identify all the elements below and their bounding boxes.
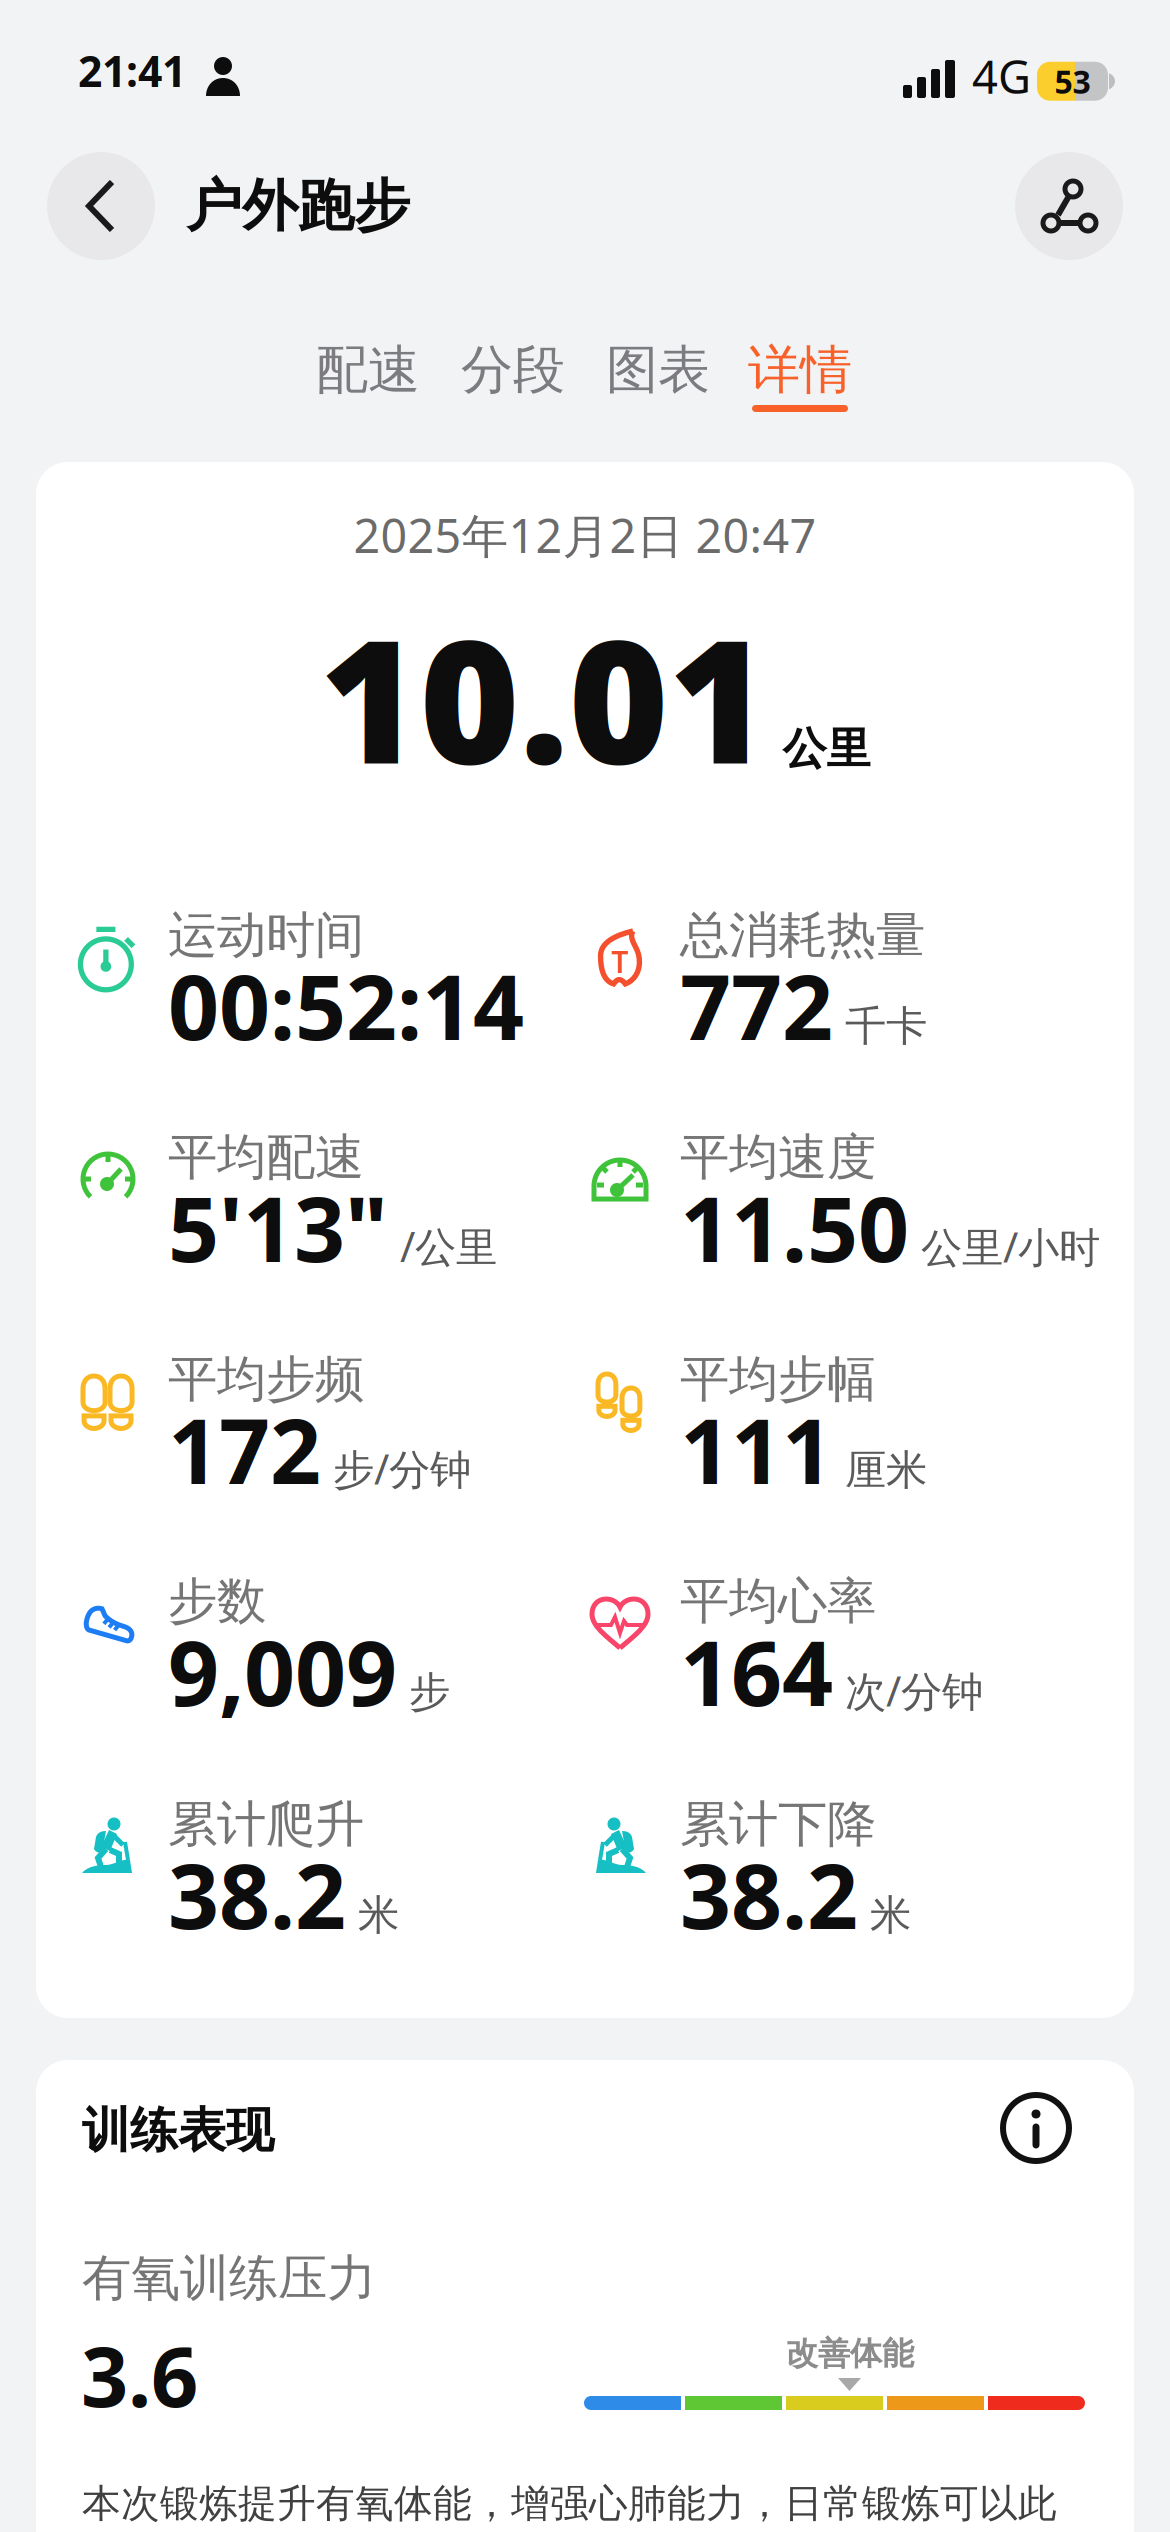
staticText: 平均心率 [680,1571,876,1632]
staticText: 平均步幅 [680,1349,876,1410]
staticText: 00:52:14 [168,946,524,1065]
staticText: 21:41 [78,42,186,99]
staticText: 平均步频 [168,1349,364,1410]
staticText: /公里 [400,1218,497,1273]
staticText: 3.6 [81,2320,198,2430]
staticText: 53 [1054,60,1090,102]
staticText: 4G [972,46,1031,106]
staticText: 次/分钟 [845,1663,983,1718]
staticText: 配速 [316,338,420,402]
staticText: 公里/小时 [921,1219,1100,1274]
button[interactable]: 图表 [586,338,730,434]
staticText: 米 [358,1890,399,1941]
staticText: 111 [680,1390,833,1509]
staticText: 步 [409,1667,450,1718]
staticText: 训练表现 [82,2101,274,2160]
staticText: 厘米 [845,1445,927,1496]
button[interactable]: Share [1015,152,1123,260]
staticText: 9,009 [168,1612,397,1731]
button[interactable]: 配速 [296,338,440,434]
staticText: 户外跑步 [186,172,410,240]
staticText: 累计爬升 [168,1794,364,1855]
staticText: 772 [680,946,833,1065]
button[interactable]: 分段 [441,338,585,434]
staticText: T [612,942,628,980]
staticText: 分段 [461,338,565,402]
staticText: 38.2 [680,1835,858,1954]
staticText: 平均速度 [680,1127,876,1188]
staticText: 本次锻炼提升有氧体能，增强心肺能力，日常锻炼可以此 [82,2480,1057,2527]
button[interactable]: 详情 [728,338,872,434]
staticText: 图表 [606,338,710,402]
staticText: 千卡 [845,1001,927,1052]
staticText: 总消耗热量 [680,905,925,966]
button[interactable]: Back [47,152,155,260]
staticText: 公里 [782,722,870,776]
staticText: 详情 [748,338,852,402]
button[interactable]: Info [1002,2094,1070,2162]
staticText: 172 [168,1390,321,1509]
staticText: 步数 [168,1571,266,1632]
staticText: 米 [870,1890,911,1941]
staticText: 平均配速 [168,1127,364,1188]
staticText: 步/分钟 [333,1441,471,1496]
staticText: 2025年12月2日 20:47 [353,504,816,566]
staticText: 有氧训练压力 [82,2248,376,2309]
staticText: 改善体能 [786,2334,914,2373]
staticText: 10.01 [319,584,768,811]
staticText: 累计下降 [680,1794,876,1855]
staticText: 运动时间 [168,905,364,966]
staticText: 164 [680,1612,833,1731]
staticText: 38.2 [168,1835,346,1954]
staticText: 5'13" [168,1168,388,1287]
staticText: 11.50 [680,1168,909,1287]
